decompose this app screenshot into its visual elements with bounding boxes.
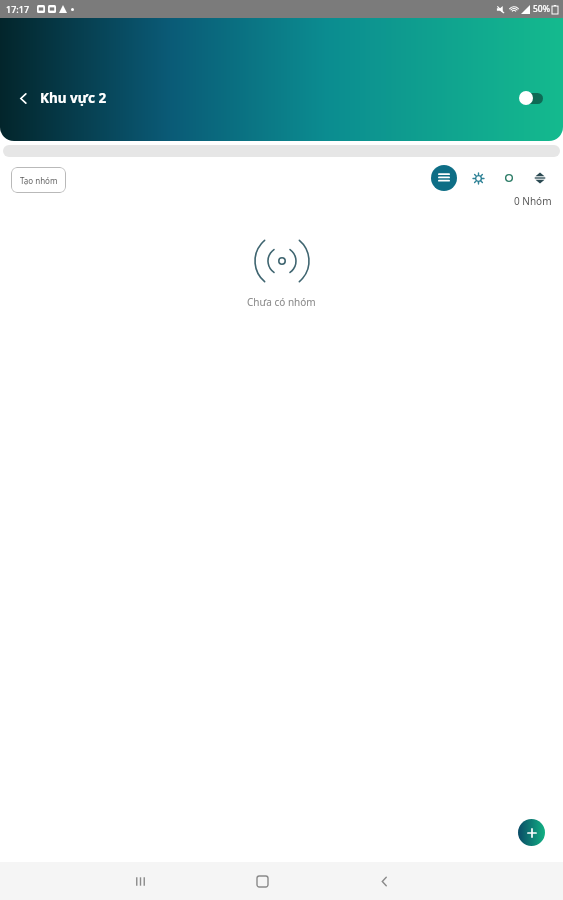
button[interactable]: Settings [469, 169, 487, 187]
staticText: 50% [533, 3, 550, 15]
button[interactable]: Home [240, 862, 284, 900]
staticText: Tạo nhóm [20, 175, 58, 186]
other: Back [10, 85, 36, 111]
staticText: Chưa có nhóm [247, 295, 316, 309]
button[interactable]: Add [518, 819, 545, 846]
staticText: 17:17 [6, 3, 30, 15]
staticText: 0 Nhóm [514, 194, 552, 208]
button[interactable]: Recents [118, 862, 162, 900]
button[interactable]: List view [431, 165, 457, 191]
button[interactable]: Back [362, 862, 406, 900]
button[interactable]: Back [10, 85, 107, 111]
staticText: Khu vực 2 [40, 89, 107, 107]
button[interactable]: Map view [500, 169, 518, 187]
button[interactable]: Sort [531, 169, 549, 187]
button[interactable]: Toggle area [518, 89, 548, 107]
button[interactable]: Tạo nhóm [11, 167, 66, 193]
